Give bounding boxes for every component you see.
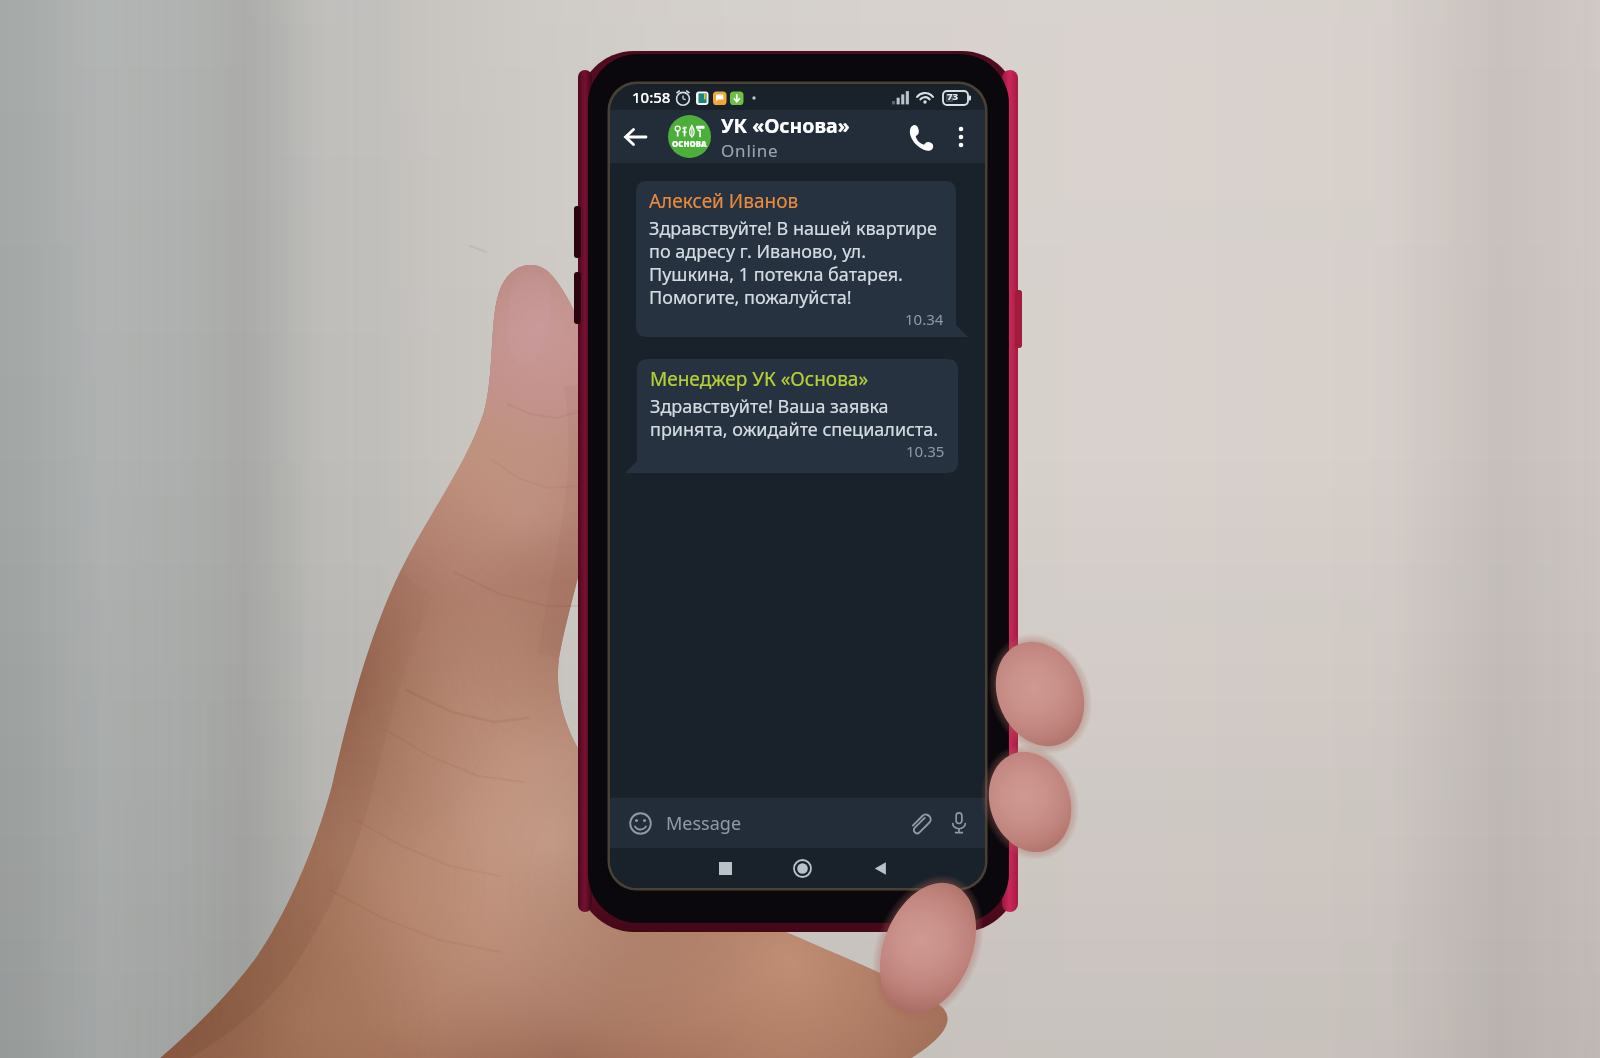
- button[interactable]: Call: [897, 115, 941, 159]
- button[interactable]: More options: [941, 117, 981, 157]
- staticText: 10.34: [905, 309, 944, 325]
- staticText: Здравствуйте! Ваша заявка принята, ожида…: [650, 394, 945, 441]
- button[interactable]: Attach: [899, 803, 939, 843]
- staticText: УК «Основа»: [721, 112, 850, 139]
- staticText: Message: [666, 811, 742, 836]
- staticText: 73: [947, 90, 958, 103]
- staticText: 10.35: [906, 441, 945, 459]
- button[interactable]: Recent apps: [703, 848, 747, 888]
- button[interactable]: Voice message: [939, 803, 979, 843]
- button[interactable]: Back: [858, 848, 902, 888]
- button[interactable]: Back: [616, 117, 656, 157]
- staticText: Online: [721, 139, 779, 162]
- staticText: ОСНОВА: [672, 139, 707, 150]
- staticText: Менеджер УК «Основа»: [650, 366, 869, 392]
- staticText: Алексей Иванов: [649, 188, 799, 214]
- button[interactable]: Home: [780, 848, 824, 888]
- staticText: 10:58: [632, 87, 671, 107]
- button[interactable]: Emoji: [624, 807, 656, 839]
- staticText: Здравствуйте! В нашей квартире по адресу…: [649, 216, 944, 309]
